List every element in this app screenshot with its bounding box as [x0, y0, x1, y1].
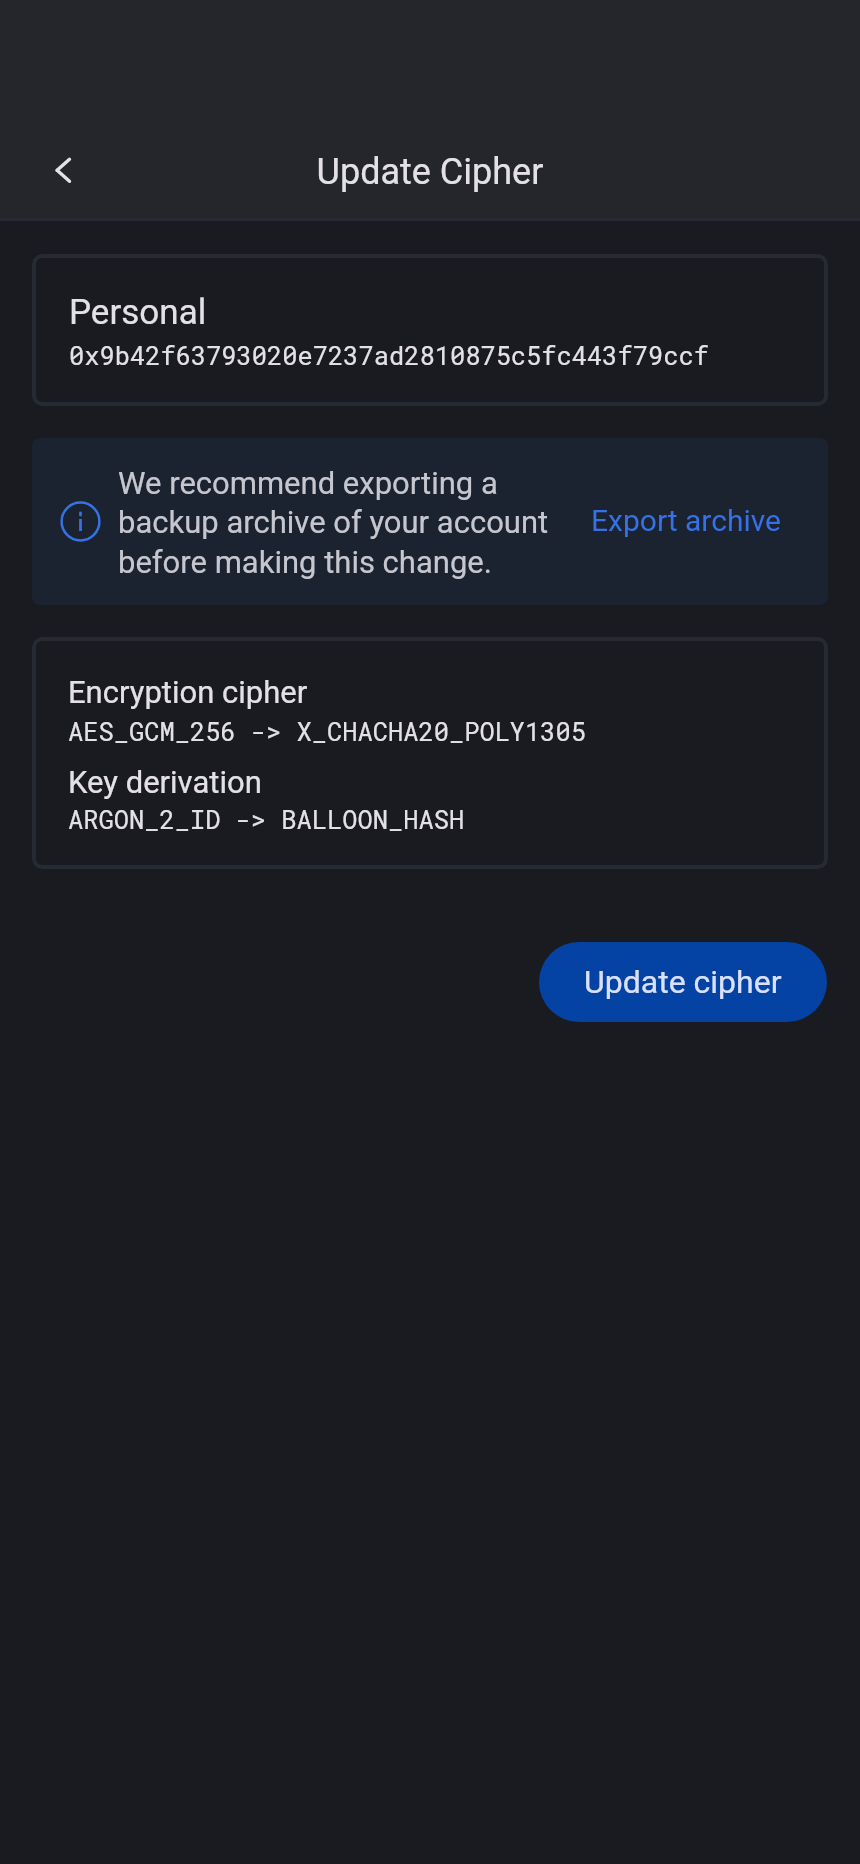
staticText: Key derivation	[68, 764, 262, 800]
button[interactable]: Export archive	[587, 499, 786, 542]
button[interactable]: Update cipher	[539, 942, 827, 1022]
staticText: Export archive	[591, 503, 782, 538]
staticText: Update cipher	[584, 963, 782, 1001]
staticText: AES_GCM_256 -> X_CHACHA20_POLY1305	[68, 714, 587, 747]
button[interactable]: Personal	[32, 254, 828, 406]
staticText: Update Cipher	[0, 151, 860, 193]
staticText: We recommend exporting a backup archive …	[118, 465, 558, 581]
staticText: 0x9b42f63793020e7237ad2810875c5fc443f79c…	[69, 338, 709, 371]
button[interactable]: Back	[20, 128, 104, 212]
staticText: Encryption cipher	[68, 674, 308, 710]
staticText: Personal	[69, 292, 207, 333]
staticText: ARGON_2_ID -> BALLOON_HASH	[68, 802, 465, 835]
